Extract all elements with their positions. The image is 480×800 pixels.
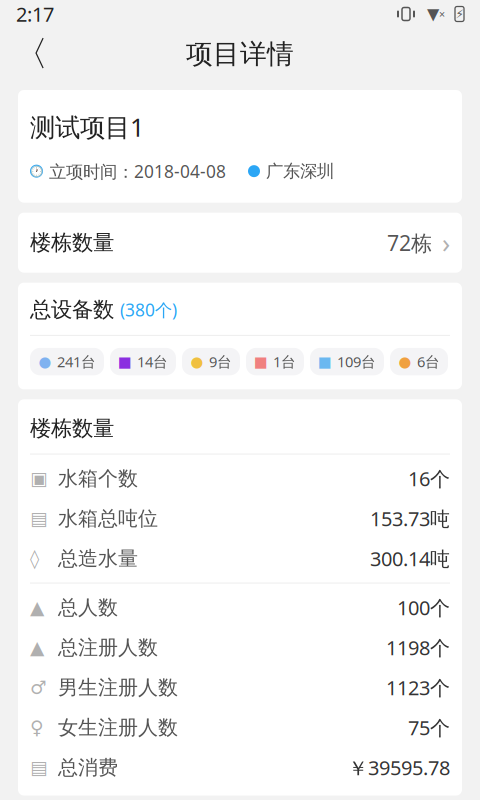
staticText: 300.14吨 [370, 545, 450, 572]
staticText: 72栋 [387, 228, 432, 257]
staticText: 6台 [417, 352, 440, 371]
staticText: 楼栋数量 [30, 415, 114, 441]
staticText: 100个 [397, 594, 450, 621]
staticText: 总人数 [58, 595, 118, 620]
staticText: ■ [118, 353, 132, 370]
staticText: ▤ [30, 508, 48, 529]
staticText: ■ [254, 353, 268, 370]
staticText: 9台 [209, 352, 232, 371]
button[interactable]: 楼栋数量 [0, 213, 480, 273]
staticText: 1198个 [386, 634, 450, 661]
staticText: 立项时间：2018-04-08 [49, 160, 226, 183]
staticText: 109台 [337, 352, 376, 371]
staticText: 1123个 [386, 674, 450, 701]
staticText: ● [190, 353, 203, 370]
staticText: 总注册人数 [58, 635, 158, 660]
staticText: ■ [318, 353, 332, 370]
staticText: (380个) [120, 298, 177, 321]
staticText: 水箱总吨位 [58, 506, 158, 531]
staticText: 🕐 [30, 165, 43, 177]
staticText: 14台 [137, 352, 168, 371]
staticText: ▤ [30, 757, 48, 778]
staticText: ● [38, 353, 51, 370]
staticText: ▲ [30, 637, 44, 658]
staticText: 广东深圳 [266, 160, 334, 182]
staticText: 测试项目1 [30, 110, 144, 144]
staticText: 女生注册人数 [58, 715, 178, 740]
staticText: 楼栋数量 [30, 230, 114, 256]
staticText: × [439, 7, 445, 21]
staticText: 16个 [408, 465, 450, 492]
staticText: 总设备数 [30, 297, 114, 323]
staticText: › [442, 225, 450, 260]
staticText: 总消费 [58, 755, 118, 780]
staticText: ◊ [30, 548, 39, 569]
button[interactable]: Back [8, 30, 54, 78]
staticText: 水箱个数 [58, 466, 138, 491]
staticText: 1台 [273, 352, 296, 371]
staticText: 项目详情 [186, 38, 294, 70]
staticText: ● [398, 353, 411, 370]
staticText: ♂ [30, 677, 47, 698]
staticText: 男生注册人数 [58, 675, 178, 700]
staticText: 〈 [13, 33, 48, 75]
staticText: ♀ [30, 717, 44, 738]
staticText: ⚡︎ [455, 7, 463, 21]
staticText: 241台 [57, 352, 96, 371]
staticText: 2:17 [16, 1, 54, 27]
staticText: ▲ [30, 597, 44, 618]
staticText: 153.73吨 [370, 505, 450, 532]
staticText: ￥39595.78 [348, 754, 450, 781]
staticText: 总造水量 [58, 546, 138, 571]
staticText: ▣ [30, 468, 48, 489]
staticText: ▼ [427, 5, 439, 23]
staticText: 75个 [408, 714, 450, 741]
